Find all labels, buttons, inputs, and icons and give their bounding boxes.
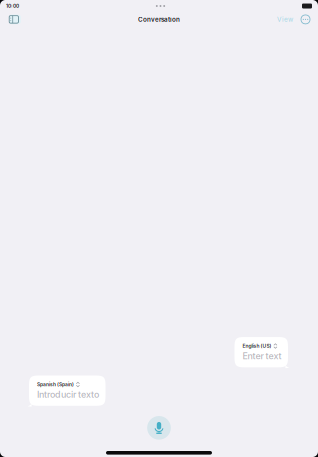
staticText: 10:00 <box>6 3 19 9</box>
button[interactable]: Spanish (Spain) <box>29 375 105 406</box>
staticText: Spanish (Spain) <box>37 381 74 387</box>
button[interactable]: Record <box>147 416 171 440</box>
button[interactable]: View <box>277 12 293 26</box>
staticText: Introducir texto <box>37 389 99 400</box>
staticText: View <box>277 15 293 23</box>
button[interactable]: More <box>300 12 311 26</box>
button[interactable]: English (US) <box>234 337 288 367</box>
staticText: English (US) <box>242 343 271 349</box>
staticText: Conversation <box>138 16 180 23</box>
staticText: Enter text <box>242 350 281 361</box>
button[interactable]: Show Sidebar <box>6 12 24 26</box>
